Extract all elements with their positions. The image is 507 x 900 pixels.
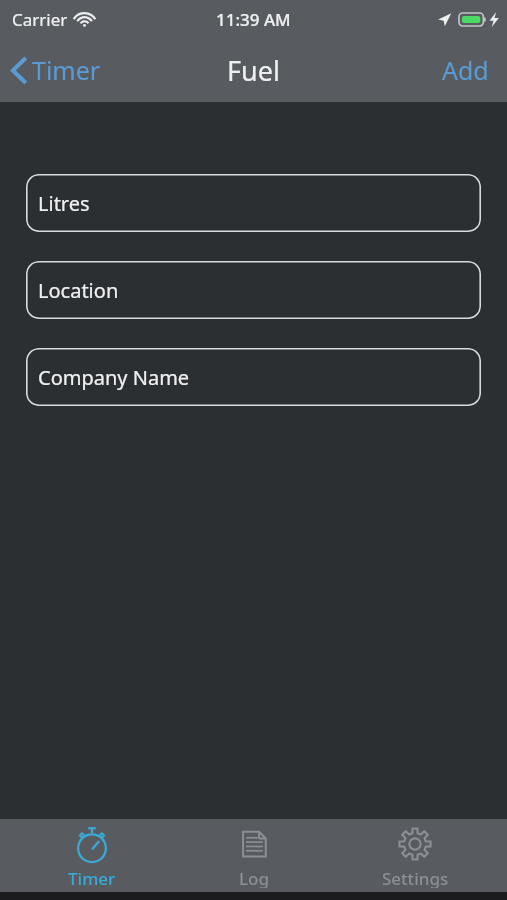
- button[interactable]: Log: [184, 819, 324, 892]
- button[interactable]: Location: [26, 261, 481, 319]
- button[interactable]: Company Name: [26, 348, 481, 406]
- staticText: Timer: [32, 53, 101, 87]
- other: Log: [233, 823, 275, 865]
- staticText: Log: [239, 867, 270, 888]
- staticText: Settings: [382, 867, 449, 888]
- other: Timer: [71, 823, 113, 865]
- button[interactable]: Add: [424, 45, 507, 95]
- button[interactable]: Settings: [345, 819, 485, 892]
- staticText: Location: [38, 277, 119, 304]
- staticText: Fuel: [227, 52, 280, 89]
- staticText: Timer: [68, 867, 116, 888]
- button[interactable]: Timer: [0, 47, 113, 93]
- button[interactable]: Timer: [22, 819, 162, 892]
- button[interactable]: Litres: [26, 174, 481, 232]
- staticText: Carrier: [12, 8, 68, 31]
- staticText: Add: [442, 53, 489, 87]
- other: Settings: [394, 823, 436, 865]
- staticText: Litres: [38, 190, 90, 217]
- staticText: 11:39 AM: [216, 8, 291, 31]
- staticText: Company Name: [38, 364, 190, 391]
